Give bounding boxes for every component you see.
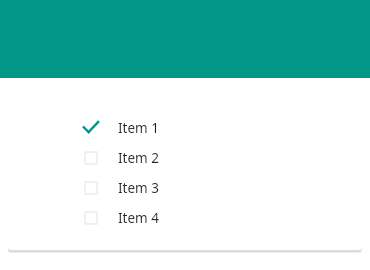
button[interactable]: Item 3	[8, 173, 362, 203]
button[interactable]: Item 1	[8, 113, 362, 143]
staticText: Item 2	[118, 149, 159, 167]
button[interactable]: Item 2	[8, 143, 362, 173]
staticText: Item 1	[118, 119, 159, 137]
staticText: Item 4	[118, 209, 159, 227]
staticText: Item 3	[118, 179, 159, 197]
button[interactable]: Item 4	[8, 203, 362, 233]
